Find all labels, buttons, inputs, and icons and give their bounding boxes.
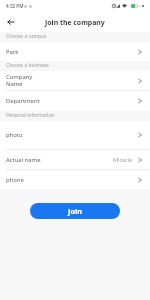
staticText: Choose a business	[6, 62, 49, 69]
staticText: Join	[68, 206, 82, 216]
button[interactable]: Back	[3, 14, 19, 30]
button[interactable]: phone	[0, 170, 150, 189]
staticText: Miracle	[113, 156, 133, 164]
staticText: Actual name	[6, 156, 41, 164]
button[interactable]: Department	[0, 91, 150, 111]
staticText: Department	[6, 97, 40, 105]
staticText: phone	[6, 176, 24, 184]
button[interactable]: Park	[0, 42, 150, 61]
staticText: Join the company	[45, 18, 105, 27]
staticText: Park	[6, 48, 19, 56]
button[interactable]: Company Name	[0, 71, 150, 90]
staticText: photo	[6, 131, 23, 139]
button[interactable]: photo	[0, 121, 150, 149]
staticText: Company Name	[6, 73, 33, 88]
button[interactable]: Actual name	[0, 150, 150, 169]
staticText: 4:32 PM	[6, 3, 24, 9]
button[interactable]: Join	[30, 203, 120, 219]
staticText: Personal information	[6, 112, 55, 119]
staticText: Choose a campus	[6, 33, 47, 40]
